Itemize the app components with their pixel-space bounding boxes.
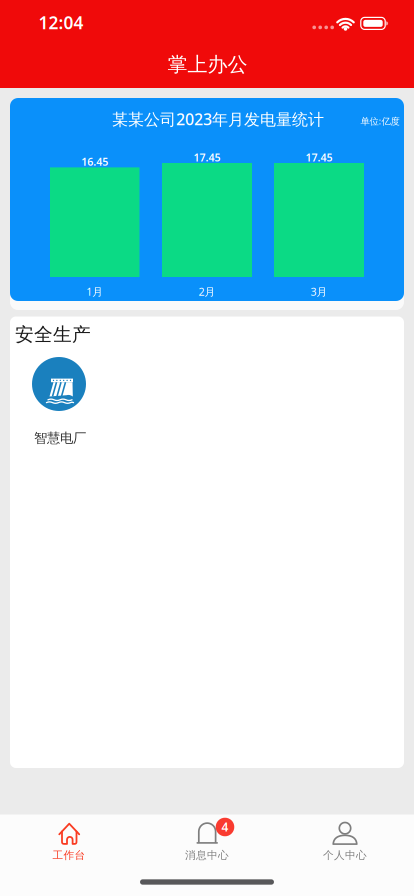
button[interactable]: 智慧电厂: [25, 355, 93, 445]
staticText: 4: [221, 819, 228, 835]
staticText: 17.45: [193, 150, 220, 164]
button[interactable]: 工作台: [0, 814, 138, 880]
staticText: 1月: [86, 284, 103, 299]
staticText: 掌上办公: [167, 52, 247, 77]
staticText: 消息中心: [185, 849, 229, 862]
button[interactable]: 4: [138, 814, 276, 880]
staticText: 智慧电厂: [34, 430, 86, 446]
staticText: 2月: [198, 284, 215, 299]
staticText: 12:04: [38, 11, 83, 34]
staticText: 3月: [310, 284, 327, 299]
button[interactable]: 个人中心: [276, 814, 414, 880]
staticText: 安全生产: [15, 323, 91, 346]
staticText: 17.45: [305, 150, 332, 164]
staticText: 16.45: [81, 154, 108, 169]
staticText: 工作台: [52, 849, 85, 862]
staticText: 某某公司2023年月发电量统计: [112, 108, 324, 130]
staticText: 个人中心: [323, 849, 367, 862]
staticText: 单位:亿度: [360, 115, 399, 127]
